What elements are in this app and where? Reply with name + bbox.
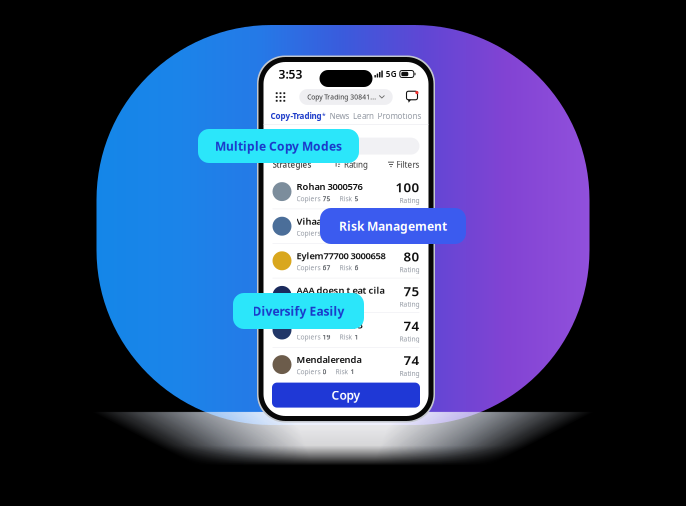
staticText: Risk bbox=[339, 332, 354, 341]
staticText: Rohan 3000576 bbox=[296, 180, 362, 193]
button[interactable]: Rating bbox=[335, 159, 368, 170]
staticText: 1 bbox=[354, 332, 358, 341]
button[interactable]: Mendalerenda bbox=[263, 348, 428, 382]
staticText: Rating bbox=[399, 265, 419, 274]
staticText: 74 bbox=[403, 351, 419, 369]
staticText: 74 bbox=[403, 317, 419, 334]
staticText: 6 bbox=[354, 263, 358, 272]
button[interactable]: Copy-Trading bbox=[270, 111, 326, 121]
staticText: Xenon 3000273 bbox=[296, 319, 362, 331]
button[interactable]: Vihaan 3000198 bbox=[263, 209, 428, 243]
staticText: 5G bbox=[386, 69, 397, 79]
staticText: Mendalerenda bbox=[296, 353, 361, 366]
staticText: Promotions bbox=[377, 111, 421, 121]
staticText: Strategies bbox=[272, 159, 311, 170]
staticText: Eylem77700 3000658 bbox=[296, 249, 385, 262]
button[interactable]: Diversify Easily bbox=[233, 293, 364, 329]
staticText: Rating bbox=[399, 369, 419, 378]
staticText: Copiers bbox=[296, 298, 322, 307]
staticText: 80 bbox=[403, 247, 419, 265]
button[interactable]: Promotions bbox=[377, 111, 421, 121]
staticText: 75 bbox=[322, 194, 330, 203]
staticText: Multiple Copy Modes bbox=[215, 138, 342, 154]
staticText: Rating bbox=[399, 334, 419, 343]
staticText: 1 bbox=[350, 367, 354, 376]
staticText: 3 bbox=[358, 229, 362, 238]
button[interactable]: Xenon 3000273 bbox=[263, 313, 428, 347]
staticText: News bbox=[329, 111, 349, 121]
staticText: Copy-Trading bbox=[270, 111, 321, 121]
staticText: Copiers bbox=[296, 332, 322, 341]
staticText: Risk Management bbox=[339, 218, 447, 234]
button[interactable]: Copy bbox=[272, 383, 420, 408]
button[interactable]: Eylem77700 3000658 bbox=[263, 244, 428, 278]
staticText: * bbox=[322, 111, 326, 120]
staticText: AAA doesn t eat cila bbox=[296, 284, 384, 296]
staticText: Search provider bbox=[280, 141, 339, 151]
button[interactable]: Copy Trading 30841... bbox=[299, 89, 393, 105]
button[interactable]: Learn bbox=[353, 111, 374, 121]
button[interactable]: Filters bbox=[388, 159, 419, 170]
staticText: Copiers bbox=[296, 229, 322, 238]
staticText: Rating bbox=[399, 300, 419, 309]
staticText: Risk bbox=[343, 229, 358, 238]
staticText: Copy Trading 30841... bbox=[307, 93, 376, 101]
staticText: 75 bbox=[403, 282, 419, 300]
staticText: Copiers bbox=[296, 194, 322, 203]
staticText: 5 bbox=[354, 194, 358, 203]
staticText: 90 bbox=[403, 213, 419, 231]
staticText: 3:53 bbox=[278, 66, 302, 82]
staticText: Rating bbox=[399, 196, 419, 205]
staticText: Filters bbox=[396, 159, 419, 170]
staticText: Risk bbox=[339, 263, 354, 272]
staticText: Risk bbox=[335, 367, 350, 376]
staticText: 100 bbox=[395, 178, 419, 196]
staticText: 0 bbox=[322, 367, 326, 376]
button[interactable]: Multiple Copy Modes bbox=[198, 129, 359, 163]
staticText: Vihaan 3000198 bbox=[296, 215, 364, 227]
staticText: 67 bbox=[322, 263, 330, 272]
staticText: Risk bbox=[339, 194, 354, 203]
button[interactable]: Rohan 3000576 bbox=[263, 175, 428, 209]
staticText: Learn bbox=[353, 111, 374, 121]
button[interactable]: Risk Management bbox=[320, 208, 466, 244]
button[interactable]: Messages bbox=[405, 91, 418, 103]
staticText: Rating bbox=[344, 159, 368, 170]
staticText: Rating bbox=[399, 231, 419, 239]
staticText: Copy bbox=[331, 387, 360, 403]
staticText: Copiers bbox=[296, 263, 322, 272]
staticText: Copiers bbox=[296, 367, 322, 376]
staticText: Diversify Easily bbox=[252, 303, 344, 319]
staticText: 19 bbox=[322, 332, 330, 341]
button[interactable]: News bbox=[329, 111, 349, 121]
button[interactable]: AAA doesn t eat cila bbox=[263, 278, 428, 312]
button[interactable]: Apps bbox=[273, 90, 287, 104]
